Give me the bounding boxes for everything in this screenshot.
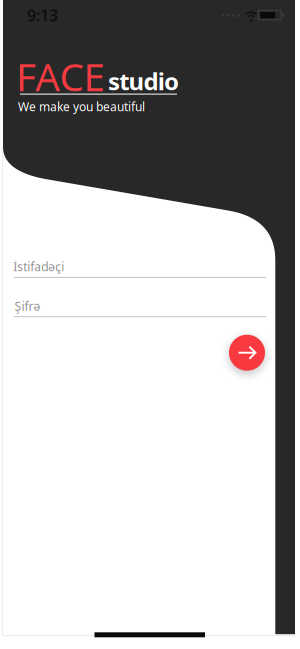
staticText: 9:13 xyxy=(27,5,58,26)
button[interactable]: Şifrə xyxy=(14,297,266,319)
button[interactable]: İstifadəçi xyxy=(14,258,266,280)
staticText: İstifadəçi xyxy=(13,259,64,275)
staticText: Şifrə xyxy=(14,298,40,314)
staticText: FACE xyxy=(16,51,105,102)
button[interactable] xyxy=(229,335,265,371)
staticText: studio xyxy=(108,65,179,97)
staticText: We make you beautiful xyxy=(18,99,145,114)
